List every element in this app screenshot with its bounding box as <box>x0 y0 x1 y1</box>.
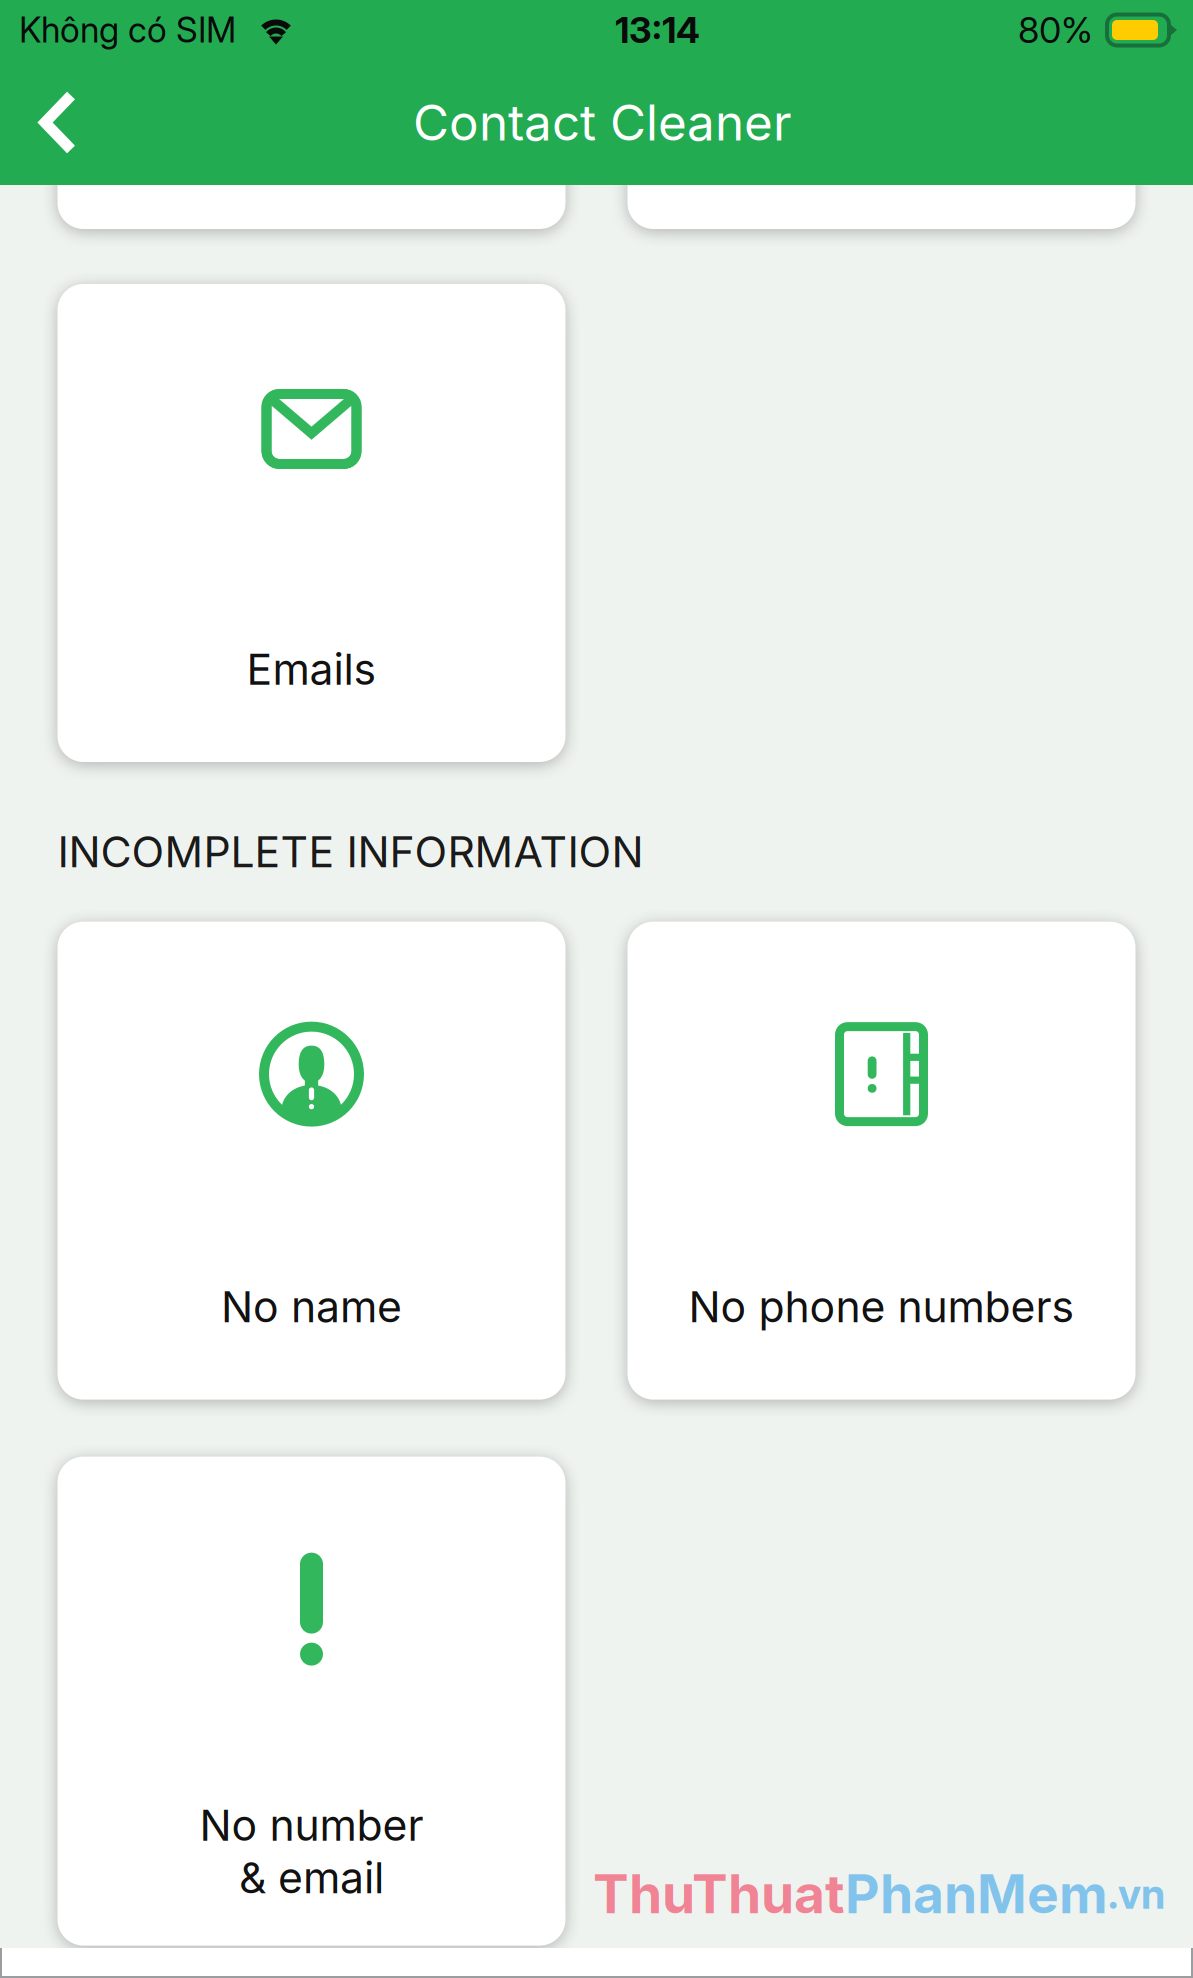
button[interactable]: Emails <box>57 284 565 762</box>
staticText: 80% <box>1018 8 1093 52</box>
staticText: 13:14 <box>615 8 700 52</box>
staticText: ThuThuat <box>593 1861 845 1926</box>
staticText: PhanMem <box>845 1861 1108 1926</box>
staticText: No number <box>199 1799 423 1851</box>
button[interactable]: No phone numbers <box>627 922 1135 1400</box>
staticText: Emails <box>246 643 376 695</box>
staticText: .vn <box>1108 1869 1165 1919</box>
staticText: INCOMPLETE INFORMATION <box>57 826 643 878</box>
staticText: No name <box>221 1281 402 1333</box>
button[interactable]: No number <box>57 1457 565 1946</box>
staticText: & email <box>239 1852 384 1904</box>
button[interactable]: No name <box>57 922 565 1400</box>
staticText: Contact Cleaner <box>413 93 792 152</box>
staticText: Không có SIM <box>19 9 236 51</box>
staticText: No phone numbers <box>688 1281 1074 1333</box>
button[interactable]: Back <box>12 76 104 168</box>
